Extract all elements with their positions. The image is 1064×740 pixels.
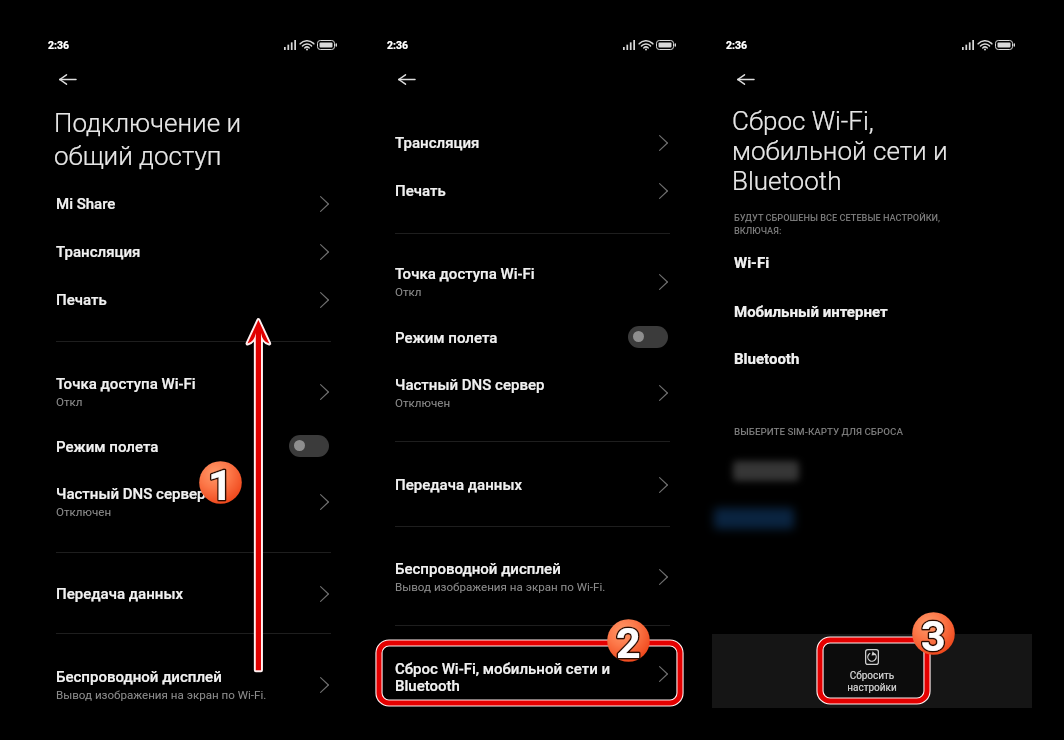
staticText: Вывод изображения на экран по Wi-Fi. (56, 688, 267, 702)
staticText: Отключен (395, 396, 451, 410)
staticText: Bluetooth (395, 677, 460, 695)
staticText: 3 (921, 611, 946, 656)
staticText: Сброс Wi-Fi, (732, 106, 874, 136)
button[interactable]: Передача данных (373, 461, 693, 509)
staticText: 2 (616, 618, 641, 663)
staticText: 2:36 (726, 39, 748, 51)
staticText: Частный DNS сервер (56, 485, 206, 503)
button[interactable]: Беспроводной дисплей (34, 661, 354, 709)
staticText: Bluetooth (732, 166, 842, 196)
staticText: 1 (208, 460, 233, 505)
staticText: 2:36 (387, 39, 409, 51)
staticText: общий доступ (54, 141, 222, 171)
staticText: 2 (616, 618, 641, 663)
button[interactable]: Частный DNS сервер (373, 369, 693, 417)
staticText: Точка доступа Wi-Fi (395, 265, 535, 283)
staticText: Передача данных (395, 476, 523, 494)
staticText: ВКЛЮЧАЯ: (734, 225, 782, 236)
staticText: Откл (395, 285, 422, 299)
staticText: мобильной сети и (732, 136, 948, 166)
button[interactable]: Трансляция (373, 119, 693, 167)
button[interactable]: Печать (373, 167, 693, 215)
staticText: Мобильный интернет (734, 303, 888, 321)
button[interactable]: Режим полета (373, 314, 693, 362)
staticText: Wi-Fi (734, 254, 770, 272)
staticText: 1 (208, 460, 233, 505)
staticText: Откл (56, 395, 83, 409)
button[interactable]: Режим полета (34, 423, 354, 471)
staticText: Режим полета (56, 438, 159, 456)
button[interactable]: Беспроводной дисплей (373, 553, 693, 601)
button[interactable]: Back (47, 59, 87, 99)
staticText: Трансляция (56, 243, 141, 261)
staticText: Трансляция (395, 134, 480, 152)
staticText: Сброс Wi-Fi, мобильной сети и (395, 660, 611, 678)
staticText: 3 (921, 611, 946, 656)
staticText: Точка доступа Wi-Fi (56, 375, 196, 393)
staticText: ВЫБЕРИТЕ SIM-КАРТУ ДЛЯ СБРОСА (734, 426, 903, 437)
button[interactable]: Точка доступа Wi-Fi (34, 368, 354, 416)
staticText: Сбросить настройки (847, 670, 897, 693)
staticText: Mi Share (56, 195, 116, 213)
staticText: Bluetooth (734, 350, 800, 368)
button[interactable]: Сбросить настройки (818, 639, 926, 703)
button[interactable]: Передача данных (34, 570, 354, 618)
button[interactable]: Сброс Wi-Fi, мобильной сети и (373, 648, 693, 700)
staticText: Режим полета (395, 329, 498, 347)
staticText: БУДУТ СБРОШЕНЫ ВСЕ СЕТЕВЫЕ НАСТРОЙКИ, (734, 212, 941, 223)
staticText: Печать (56, 291, 107, 309)
button[interactable]: Частный DNS сервер (34, 478, 354, 526)
button[interactable]: Back (725, 59, 765, 99)
staticText: Печать (395, 182, 446, 200)
staticText: Отключен (56, 505, 112, 519)
staticText: Подключение и (54, 108, 242, 138)
staticText: Частный DNS сервер (395, 376, 545, 394)
button[interactable]: Печать (34, 276, 354, 324)
staticText: Передача данных (56, 585, 184, 603)
button[interactable]: Mi Share (34, 180, 354, 228)
staticText: Беспроводной дисплей (56, 668, 222, 686)
button[interactable]: Точка доступа Wi-Fi (373, 258, 693, 306)
staticText: Вывод изображения на экран по Wi-Fi. (395, 580, 606, 594)
button[interactable]: Трансляция (34, 228, 354, 276)
staticText: Беспроводной дисплей (395, 560, 561, 578)
button[interactable]: Back (386, 59, 426, 99)
staticText: 2:36 (48, 39, 70, 51)
